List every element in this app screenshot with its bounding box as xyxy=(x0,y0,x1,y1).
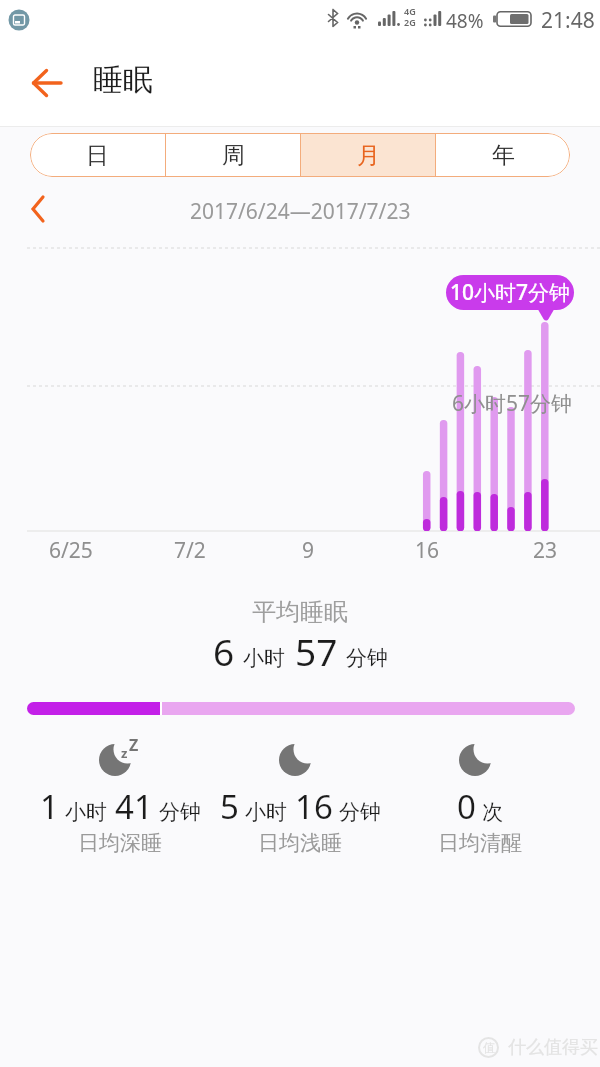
staticText: 分钟 xyxy=(159,799,201,825)
staticText: 平均睡眠 xyxy=(252,597,348,627)
staticText: 小时 xyxy=(65,799,107,825)
staticText: 月 xyxy=(357,141,380,170)
staticText: 16 xyxy=(415,536,440,565)
staticText: 2G xyxy=(404,16,416,28)
staticText: 5 xyxy=(220,784,239,829)
staticText: 值 xyxy=(483,1040,495,1055)
button[interactable]: 月 xyxy=(301,133,435,177)
staticText: 次 xyxy=(482,799,503,825)
staticText: 6 xyxy=(213,626,235,676)
staticText: 0 xyxy=(457,784,476,829)
button[interactable] xyxy=(22,190,62,228)
staticText: 4G xyxy=(404,5,416,17)
button[interactable]: 年 xyxy=(436,133,570,177)
staticText: 小时 xyxy=(243,645,285,671)
staticText: 16 xyxy=(295,784,333,829)
staticText: 7/2 xyxy=(174,536,206,565)
staticText: z xyxy=(121,744,128,762)
staticText: 小时 xyxy=(245,799,287,825)
staticText: 分钟 xyxy=(346,645,388,671)
staticText: 10小时7分钟 xyxy=(450,278,571,307)
staticText: 日均清醒 xyxy=(438,830,522,856)
button[interactable] xyxy=(20,60,76,106)
button[interactable]: 日 xyxy=(30,133,165,177)
staticText: 23 xyxy=(533,536,558,565)
staticText: 2017/6/24—2017/7/23 xyxy=(190,197,411,226)
staticText: Z xyxy=(129,734,139,756)
staticText: 57 xyxy=(295,626,338,676)
staticText: 41 xyxy=(115,784,153,829)
staticText: 日均浅睡 xyxy=(258,830,342,856)
staticText: 睡眠 xyxy=(93,61,153,99)
staticText: 6小时57分钟 xyxy=(452,389,573,418)
staticText: 48% xyxy=(446,8,484,34)
staticText: 日 xyxy=(86,141,109,170)
staticText: 日均深睡 xyxy=(78,830,162,856)
staticText: 分钟 xyxy=(339,799,381,825)
staticText: 9 xyxy=(302,536,315,565)
staticText: 1 xyxy=(40,784,59,829)
staticText: 周 xyxy=(222,141,245,170)
staticText: 6/25 xyxy=(49,536,93,565)
staticText: 什么值得买 xyxy=(508,1036,598,1059)
staticText: 21:48 xyxy=(541,6,595,35)
staticText: 年 xyxy=(492,141,515,170)
button[interactable]: 周 xyxy=(166,133,300,177)
